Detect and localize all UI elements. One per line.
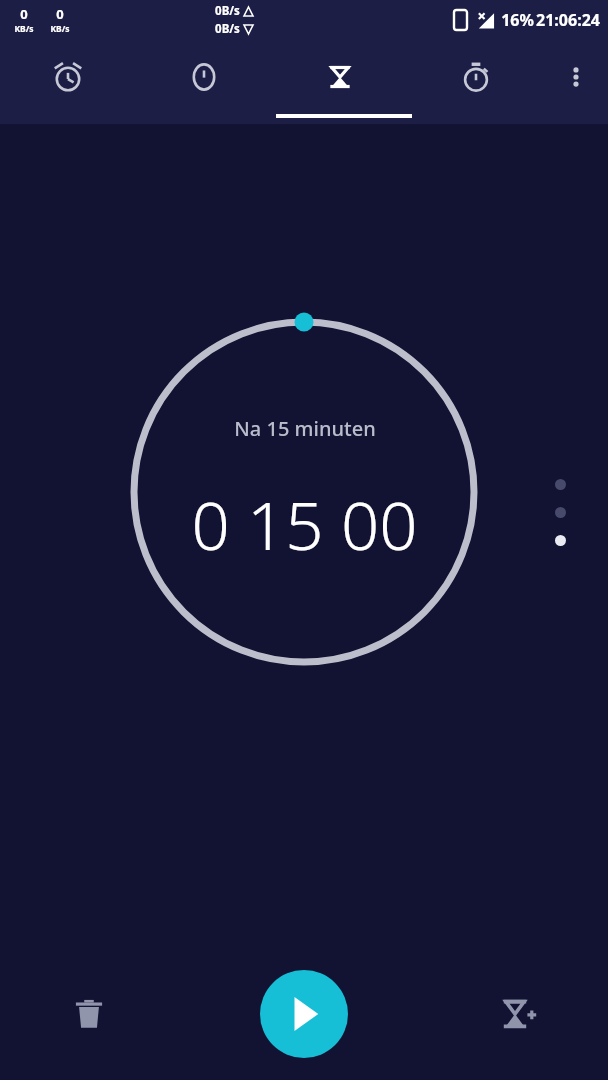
staticText: 0 15 00 [191,478,418,569]
button[interactable]: Delete timer [58,983,120,1045]
button[interactable]: Add timer [488,983,550,1045]
button[interactable]: Clock [136,40,272,114]
staticText: KB/s [50,23,70,35]
staticText: Na 15 minuten [234,415,376,442]
staticText: KB/s [14,23,34,35]
staticText: 0B/s [215,3,240,19]
staticText: 16% [501,9,534,31]
button[interactable]: Stopwatch [408,40,544,114]
staticText: 0 [20,5,28,23]
staticText: 0B/s [215,21,240,37]
staticText: 21:06:24 [536,9,600,31]
staticText: 0 [56,5,64,23]
button[interactable]: Start timer [260,970,348,1058]
button[interactable]: More options [544,40,608,114]
button[interactable]: Alarm [0,40,136,114]
button[interactable]: Timer [272,40,408,114]
